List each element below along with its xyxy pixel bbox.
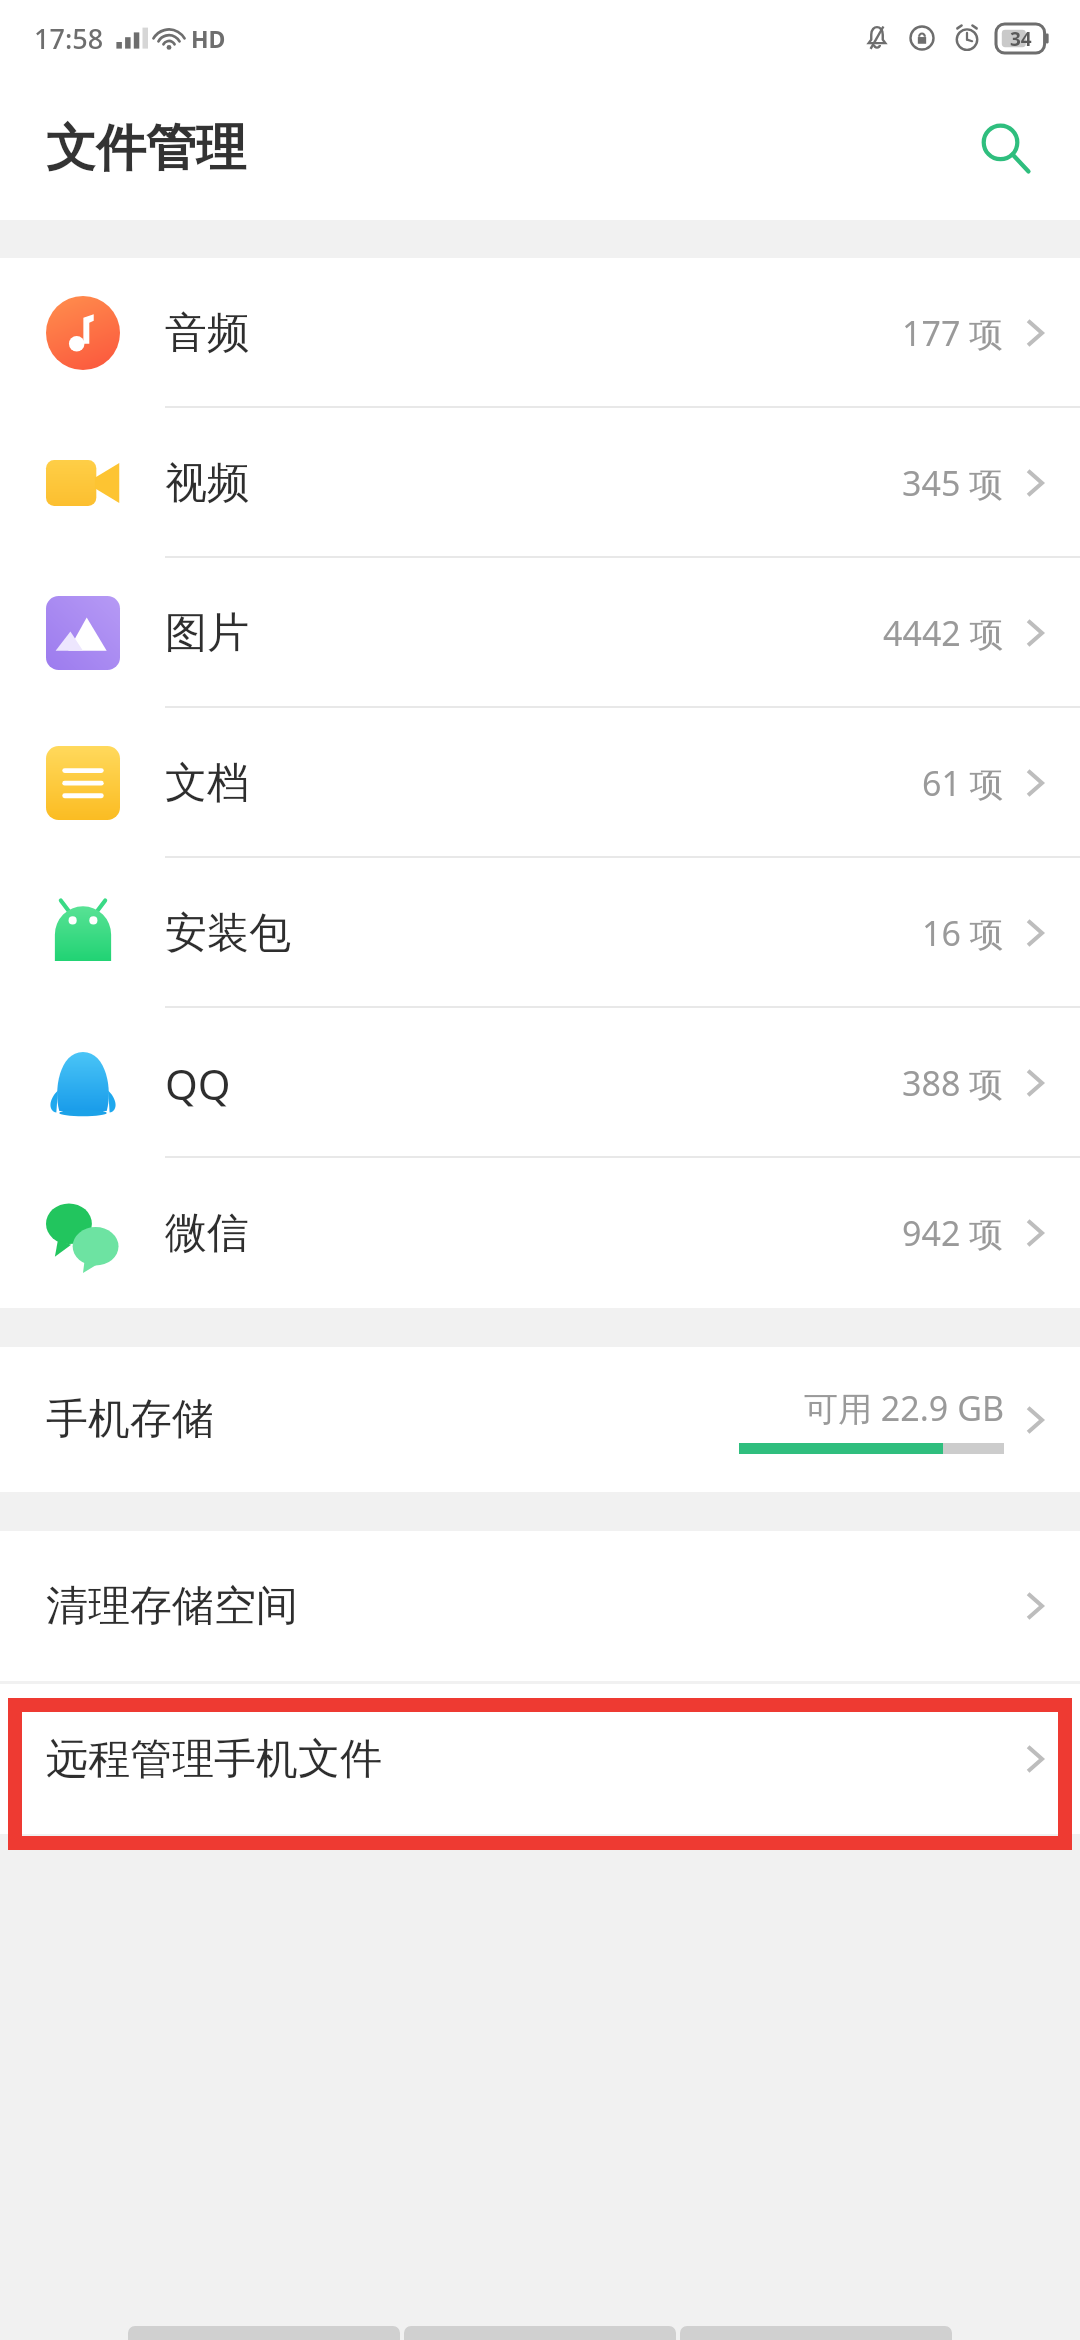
staticText: 文档 [165,757,249,810]
staticText: 17:58 [34,20,104,57]
staticText: 音频 [165,307,249,360]
button[interactable]: 图片 [0,558,1080,708]
staticText: 4442 项 [883,610,1004,656]
staticText: 视频 [165,457,249,510]
staticText: 可用 22.9 GB [804,1385,1004,1431]
button[interactable]: Search [960,103,1050,193]
button[interactable]: 视频 [0,408,1080,558]
staticText: 安装包 [165,907,291,960]
button[interactable]: 文档 [0,708,1080,858]
staticText: 手机存储 [46,1393,214,1446]
staticText: 图片 [165,607,249,660]
button[interactable]: 手机存储 [0,1347,1080,1492]
button[interactable]: 微信 [0,1158,1080,1308]
staticText: HD [191,23,226,54]
button[interactable]: 远程管理手机文件 [0,1684,1080,1834]
staticText: 345 项 [902,460,1004,506]
button[interactable]: 安装包 [0,858,1080,1008]
staticText: QQ [165,1055,231,1112]
staticText: 文件管理 [46,117,246,180]
staticText: 34 [1010,26,1032,52]
button[interactable]: 清理存储空间 [0,1531,1080,1681]
staticText: 942 项 [902,1210,1004,1256]
staticText: 远程管理手机文件 [46,1733,382,1786]
button[interactable]: 音频 [0,258,1080,408]
staticText: 388 项 [902,1060,1004,1106]
staticText: 微信 [165,1207,249,1260]
staticText: 177 项 [902,310,1004,356]
staticText: 61 项 [922,760,1004,806]
staticText: 清理存储空间 [46,1580,298,1633]
staticText: 16 项 [922,910,1004,956]
button[interactable]: QQ [0,1008,1080,1158]
